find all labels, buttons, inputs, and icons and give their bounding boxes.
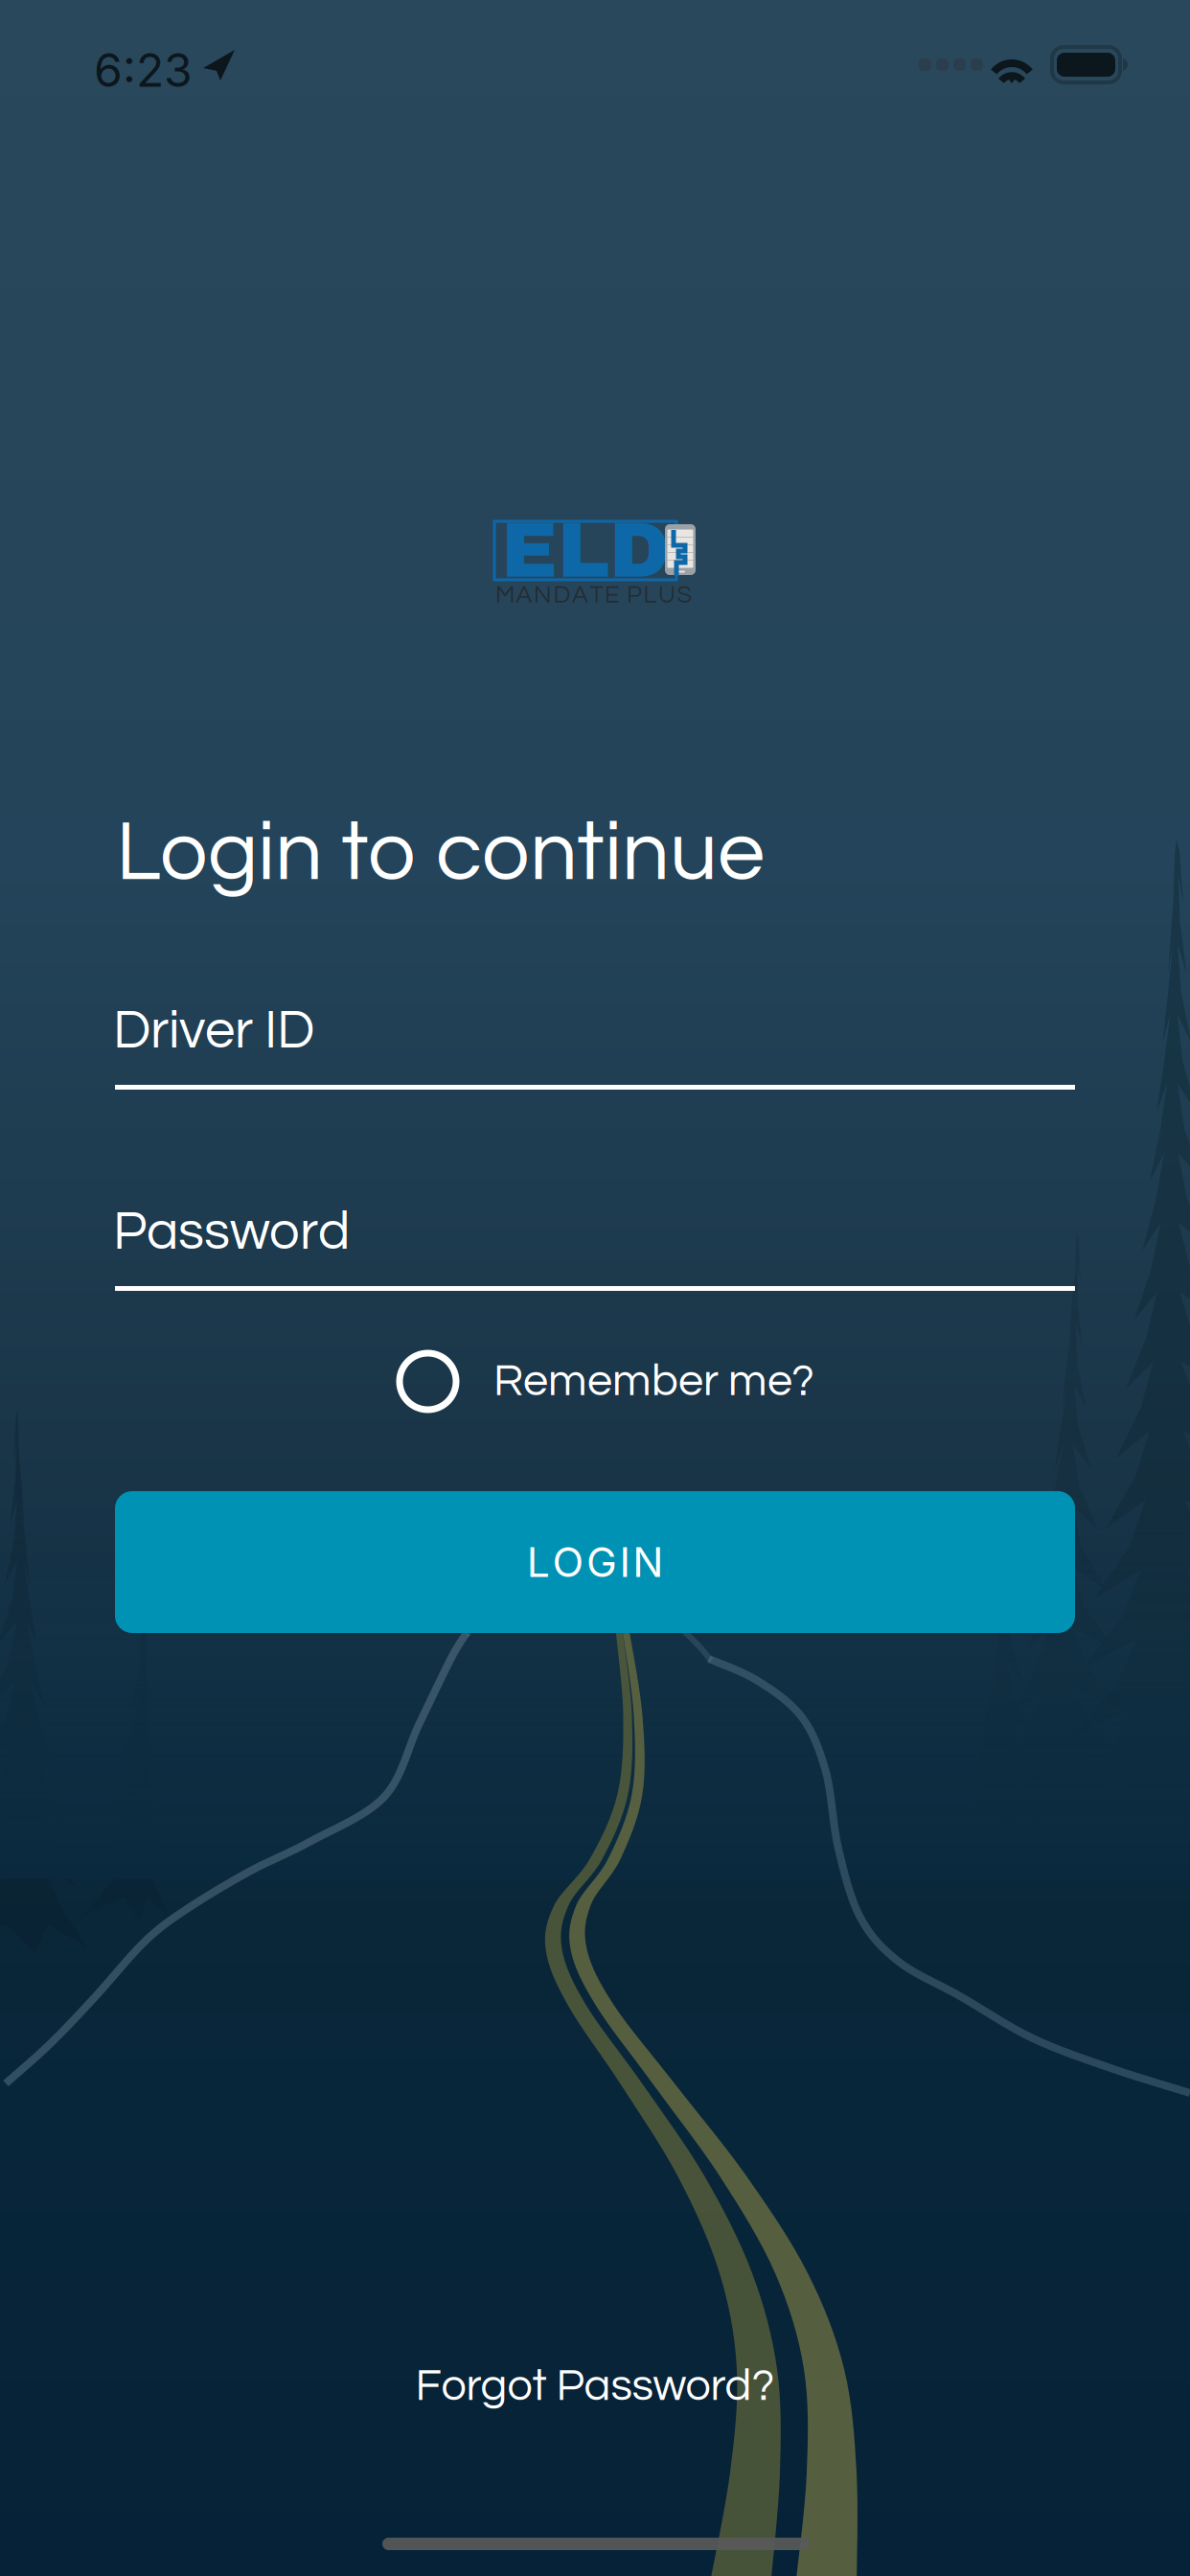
button[interactable]: Forgot Password? bbox=[394, 2348, 796, 2425]
staticText: L bbox=[527, 1537, 550, 1587]
staticText: Remember me? bbox=[493, 1358, 814, 1405]
button[interactable]: L bbox=[115, 1491, 1075, 1633]
staticText: Forgot Password? bbox=[415, 2363, 775, 2409]
staticText: M bbox=[495, 583, 515, 608]
staticText: N bbox=[534, 583, 552, 608]
staticText: Login to continue bbox=[116, 810, 765, 897]
staticText: Password bbox=[113, 1205, 350, 1260]
staticText: A bbox=[572, 583, 588, 608]
staticText: E bbox=[605, 583, 619, 608]
staticText: Driver ID bbox=[113, 1003, 314, 1059]
staticText: D bbox=[553, 583, 571, 608]
staticText: L bbox=[643, 583, 657, 608]
staticText: P bbox=[627, 583, 642, 608]
staticText: S bbox=[677, 583, 692, 608]
staticText: ELD bbox=[501, 508, 670, 593]
staticText: A bbox=[516, 583, 532, 608]
staticText: O bbox=[552, 1537, 584, 1587]
staticText: T bbox=[590, 583, 603, 608]
staticText: I bbox=[620, 1537, 630, 1587]
staticText: U bbox=[658, 583, 675, 608]
button[interactable]: Remember me? bbox=[400, 1342, 814, 1421]
staticText: 6:23 bbox=[94, 42, 193, 98]
staticText: N bbox=[633, 1537, 663, 1587]
staticText: G bbox=[586, 1537, 617, 1587]
